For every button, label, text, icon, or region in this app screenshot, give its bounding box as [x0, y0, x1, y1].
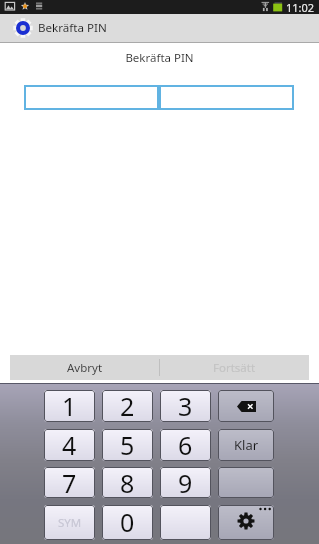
button[interactable]: 4	[44, 429, 95, 461]
button[interactable]: 5	[102, 429, 153, 461]
staticText: 9	[178, 467, 193, 497]
button[interactable]: 7	[44, 467, 95, 498]
button[interactable]	[159, 85, 294, 110]
staticText: 7	[62, 467, 77, 497]
staticText: Bekräfta PIN	[38, 20, 107, 36]
button[interactable]: 3	[160, 390, 211, 422]
button[interactable]: Avbryt	[10, 355, 159, 380]
button[interactable]: 2	[102, 390, 153, 422]
staticText: 1	[62, 390, 77, 421]
button[interactable]: Klar	[218, 429, 274, 461]
button[interactable]: Backspace	[218, 390, 274, 422]
staticText: Bekräfta PIN	[0, 50, 319, 66]
staticText: 5	[120, 429, 135, 460]
button[interactable]: Key	[160, 505, 211, 540]
button[interactable]: 8	[102, 467, 153, 498]
staticText: Fortsätt	[213, 360, 256, 376]
staticText: 6	[178, 429, 193, 460]
button[interactable]	[24, 85, 159, 110]
button[interactable]: 0	[102, 505, 153, 540]
staticText: 0	[120, 505, 135, 539]
staticText: Klar	[234, 436, 259, 454]
staticText: 11:02	[286, 0, 315, 14]
button[interactable]: 1	[44, 390, 95, 422]
staticText: Avbryt	[67, 360, 103, 376]
button[interactable]: 9	[160, 467, 211, 498]
staticText: 3	[178, 390, 193, 421]
staticText: 2	[120, 390, 135, 421]
button[interactable]: Bekräfta PIN	[0, 14, 319, 42]
button[interactable]: 6	[160, 429, 211, 461]
staticText: 8	[120, 467, 135, 497]
button[interactable]: Keyboard settings	[218, 505, 274, 540]
staticText: SYM	[58, 515, 82, 531]
button[interactable]: Fortsätt	[160, 355, 309, 380]
button[interactable]: SYM	[44, 505, 95, 540]
button[interactable]: Key	[218, 467, 274, 498]
staticText: 4	[62, 429, 77, 460]
